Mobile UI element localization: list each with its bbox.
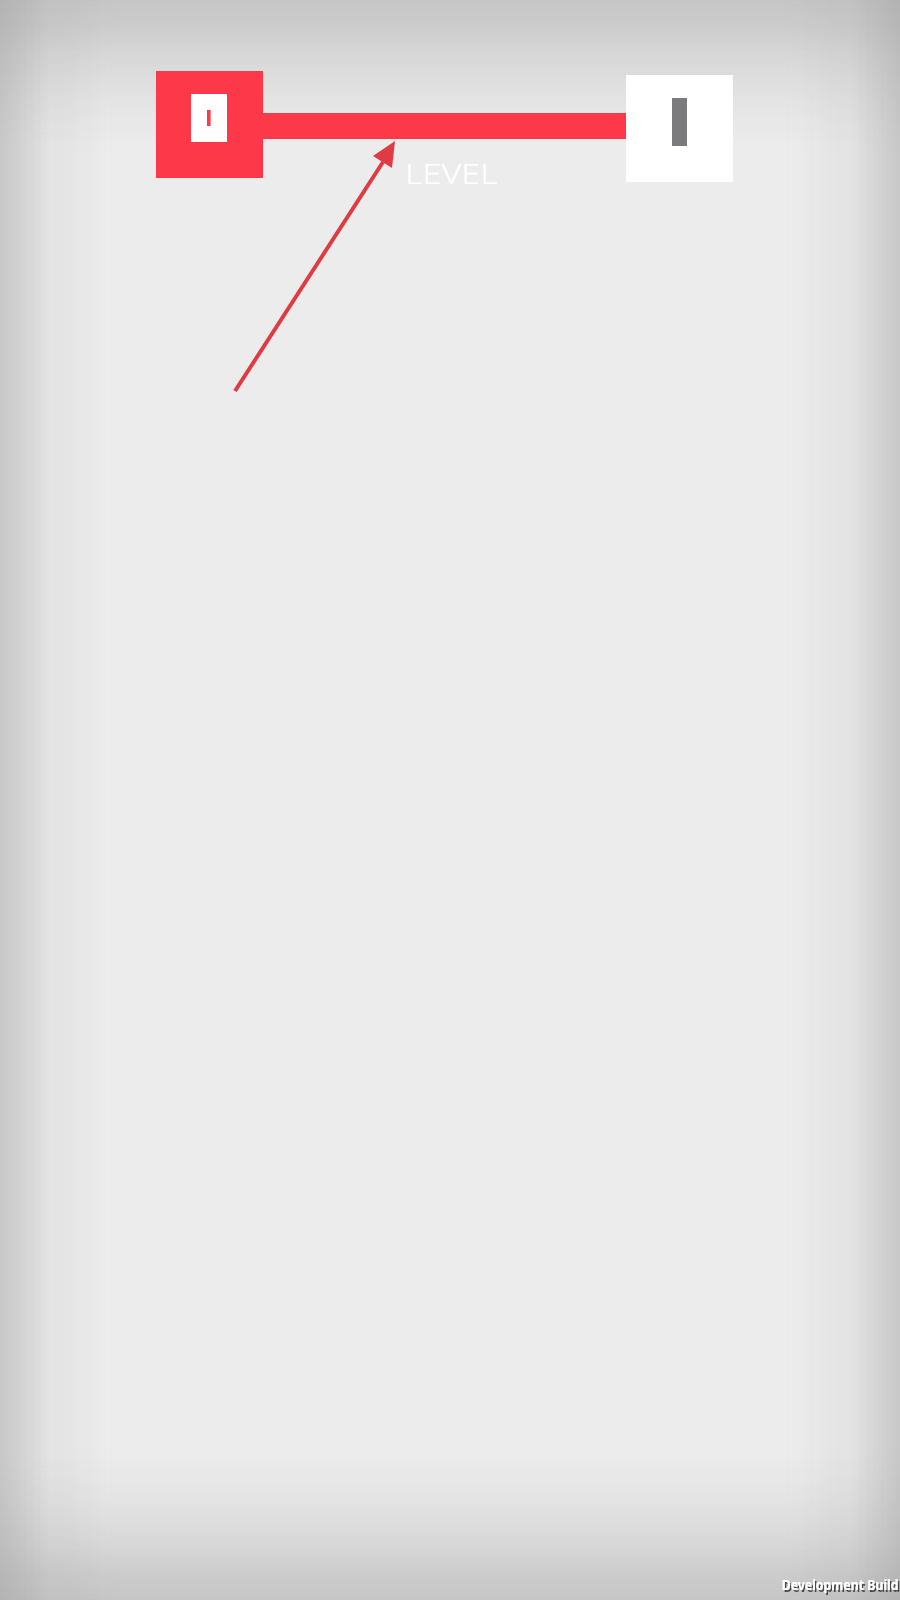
button[interactable]: Level 1 <box>156 71 263 178</box>
staticText: Development Build <box>782 1574 899 1594</box>
staticText: LEVEL <box>405 154 499 192</box>
button[interactable]: Level 2, locked <box>626 75 733 182</box>
